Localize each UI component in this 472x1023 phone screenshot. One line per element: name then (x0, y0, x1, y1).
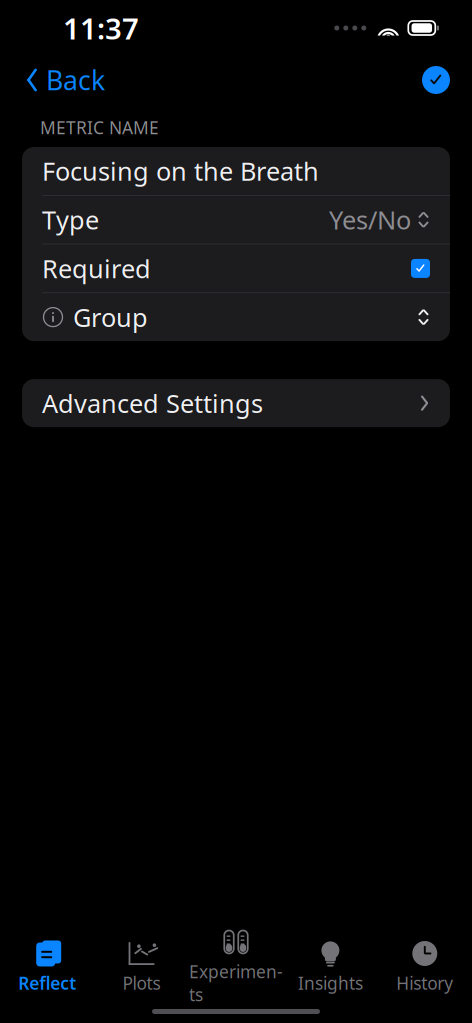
staticText: Required (42, 252, 151, 285)
staticText: Reflect (18, 971, 76, 994)
staticText: Plots (123, 971, 161, 994)
staticText: Experiments (189, 960, 283, 1006)
button[interactable]: Type (22, 196, 450, 244)
button[interactable]: History (378, 931, 472, 1000)
staticText: METRIC NAME (40, 116, 159, 139)
staticText: Group (73, 300, 148, 334)
button[interactable]: Save (416, 60, 456, 100)
button[interactable]: Insights (283, 931, 378, 1000)
button[interactable]: Back (16, 56, 113, 104)
staticText: Advanced Settings (42, 386, 263, 420)
button[interactable]: Experiments (189, 920, 283, 1012)
button[interactable]: Advanced Settings (22, 379, 450, 427)
button[interactable]: Group (22, 293, 450, 341)
staticText: Insights (298, 971, 363, 994)
staticText: History (396, 971, 453, 994)
button[interactable]: Required (22, 244, 450, 292)
button[interactable]: Plots (94, 931, 189, 1000)
staticText: Focusing on the Breath (42, 154, 319, 188)
staticText: 11:37 (63, 8, 139, 47)
staticText: Yes/No (329, 203, 411, 236)
staticText: Back (46, 62, 105, 98)
button[interactable]: Reflect (0, 931, 94, 1000)
staticText: Type (42, 203, 99, 236)
